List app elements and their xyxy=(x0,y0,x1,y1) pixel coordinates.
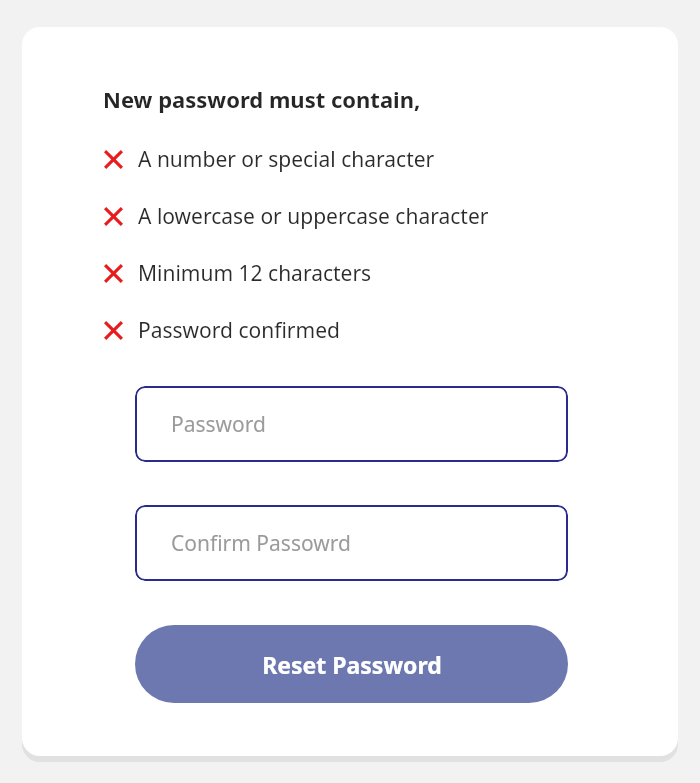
staticText: Confirm Passowrd xyxy=(171,529,351,558)
button[interactable]: Requirement not met xyxy=(103,188,590,245)
button[interactable]: Requirement not met xyxy=(103,245,590,302)
other: Requirement not met xyxy=(103,263,124,284)
staticText: Password confirmed xyxy=(138,316,340,345)
staticText: A lowercase or uppercase character xyxy=(138,202,489,231)
other: Requirement not met xyxy=(103,149,124,170)
button[interactable]: Confirm Passowrd xyxy=(135,505,568,581)
button[interactable]: Password xyxy=(135,386,568,462)
staticText: Minimum 12 characters xyxy=(138,259,372,288)
button[interactable]: Reset Password xyxy=(135,625,568,703)
button[interactable]: Requirement not met xyxy=(103,131,590,188)
staticText: Password xyxy=(171,410,266,439)
other: Requirement not met xyxy=(103,206,124,227)
staticText: New password must contain, xyxy=(103,84,421,114)
button[interactable]: Requirement not met xyxy=(103,302,590,359)
staticText: Reset Password xyxy=(262,649,442,680)
staticText: A number or special character xyxy=(138,145,435,174)
other: Requirement not met xyxy=(103,320,124,341)
